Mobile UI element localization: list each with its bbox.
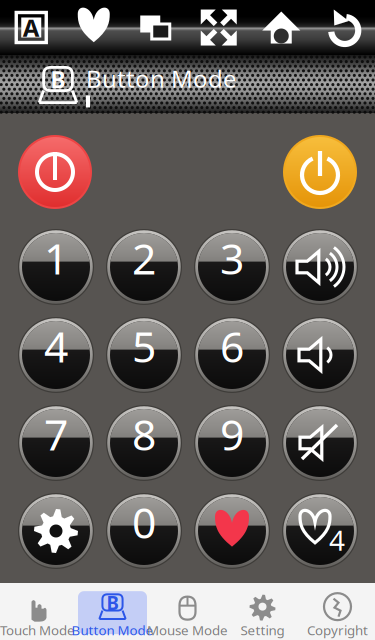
button[interactable]: 0: [106, 493, 182, 569]
button[interactable]: 1: [18, 229, 94, 305]
button[interactable]: Mute: [282, 405, 358, 481]
button[interactable]: 2: [106, 229, 182, 305]
staticText: 4: [44, 318, 68, 374]
staticText: 1: [44, 230, 68, 286]
staticText: 7: [44, 406, 68, 462]
button[interactable]: Power on: [283, 135, 357, 209]
staticText: A: [23, 12, 40, 43]
button[interactable]: Back: [312, 0, 375, 55]
staticText: 5: [132, 318, 156, 374]
button[interactable]: Volume up: [282, 229, 358, 305]
button[interactable]: Setting: [225, 583, 300, 640]
button[interactable]: Settings: [18, 493, 94, 569]
button[interactable]: 6: [194, 317, 270, 393]
button[interactable]: Home: [250, 0, 312, 55]
button[interactable]: Apps: [0, 0, 62, 55]
staticText: 9: [220, 406, 244, 462]
staticText: Copyright: [307, 621, 368, 639]
staticText: Button Mode: [86, 63, 237, 94]
button[interactable]: 7: [18, 405, 94, 481]
button[interactable]: Add favorite: [282, 493, 358, 569]
staticText: 4: [329, 521, 345, 559]
button[interactable]: Volume down: [282, 317, 358, 393]
button[interactable]: 8: [106, 405, 182, 481]
button[interactable]: Favorites: [62, 0, 125, 55]
button[interactable]: 9: [194, 405, 270, 481]
staticText: Setting: [240, 621, 284, 639]
button[interactable]: 5: [106, 317, 182, 393]
button[interactable]: B: [75, 583, 150, 640]
staticText: 2: [132, 230, 156, 286]
staticText: 6: [220, 318, 244, 374]
staticText: Touch Mode: [0, 621, 75, 639]
staticText: 0: [132, 494, 156, 550]
button[interactable]: Power off: [18, 135, 92, 209]
staticText: Button Mode: [71, 621, 153, 639]
button[interactable]: Full screen: [187, 0, 250, 55]
staticText: B: [106, 590, 118, 615]
button[interactable]: 3: [194, 229, 270, 305]
staticText: 8: [132, 406, 156, 462]
staticText: 3: [220, 230, 244, 286]
button[interactable]: Touch Mode: [0, 583, 75, 640]
staticText: Mouse Mode: [147, 621, 228, 639]
button[interactable]: Windows: [125, 0, 187, 55]
button[interactable]: Copyright: [300, 583, 375, 640]
button[interactable]: Mouse Mode: [150, 583, 225, 640]
staticText: B: [50, 64, 65, 94]
button[interactable]: 4: [18, 317, 94, 393]
button[interactable]: Favorite: [194, 493, 270, 569]
